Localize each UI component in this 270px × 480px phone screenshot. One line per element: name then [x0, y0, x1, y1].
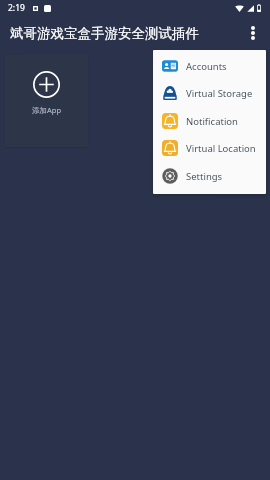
staticText: Notification — [186, 115, 238, 128]
button[interactable]: Settings — [153, 162, 266, 190]
staticText: Settings — [186, 170, 223, 183]
staticText: 添加App — [32, 105, 62, 115]
button[interactable]: Virtual Location — [153, 134, 266, 162]
staticText: 2:19 — [8, 2, 25, 14]
staticText: Virtual Location — [186, 142, 256, 155]
staticText: Virtual Storage — [186, 87, 253, 100]
button[interactable]: 添加App — [5, 55, 88, 147]
button[interactable]: Notification — [153, 107, 266, 135]
button[interactable]: Virtual Storage — [153, 79, 266, 107]
staticText: Accounts — [186, 60, 227, 73]
button[interactable]: More options — [237, 17, 268, 48]
staticText: 斌哥游戏宝盒手游安全测试插件 — [10, 25, 199, 42]
button[interactable]: Accounts — [153, 52, 266, 80]
